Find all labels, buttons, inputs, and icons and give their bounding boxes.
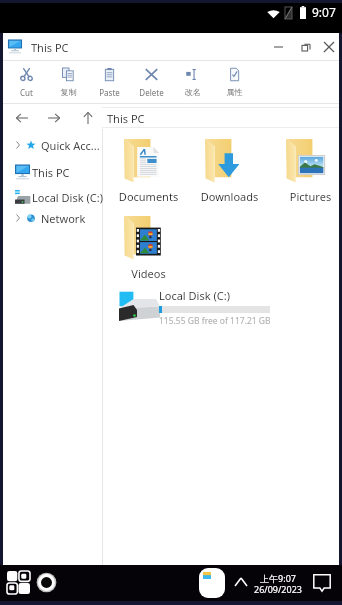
staticText: 改名: [172, 87, 213, 97]
button[interactable]: Local Disk (C:): [3, 185, 102, 209]
staticText: 上午9:07: [252, 572, 304, 584]
staticText: 复制: [48, 87, 89, 97]
button[interactable]: File Explorer: [199, 568, 225, 598]
staticText: This PC: [31, 40, 69, 55]
staticText: 9:07: [312, 4, 336, 20]
button[interactable]: Restore: [293, 33, 319, 60]
button[interactable]: 复制: [48, 62, 89, 103]
button[interactable]: Paste: [89, 62, 130, 103]
button[interactable]: Downloads: [189, 138, 270, 212]
staticText: Local Disk (C:): [159, 288, 230, 303]
staticText: Paste: [89, 87, 130, 98]
button[interactable]: Documents: [108, 138, 189, 212]
button[interactable]: Network: [3, 206, 102, 230]
button[interactable]: Close: [319, 33, 339, 60]
staticText: 26/09/2023: [252, 583, 304, 595]
button[interactable]: Local Disk (C:): [113, 285, 283, 329]
staticText: Cut: [6, 87, 47, 98]
button[interactable]: Up: [76, 106, 100, 130]
button[interactable]: Quick Acc...: [3, 133, 102, 157]
button[interactable]: 上午9:07: [252, 572, 304, 598]
staticText: Network: [41, 211, 86, 226]
button[interactable]: Search: [32, 568, 60, 596]
button[interactable]: Notifications: [305, 569, 331, 597]
button[interactable]: 属性: [214, 62, 255, 103]
staticText: 属性: [214, 87, 255, 97]
staticText: Downloads: [189, 189, 270, 204]
staticText: This PC: [107, 111, 145, 126]
button[interactable]: Forward: [42, 106, 66, 130]
staticText: Delete: [131, 87, 172, 98]
button[interactable]: Cut: [6, 62, 47, 103]
button[interactable]: This PC: [102, 107, 339, 128]
staticText: This PC: [32, 165, 70, 180]
staticText: Local Disk (C:): [32, 190, 103, 205]
button[interactable]: Minimize: [265, 33, 291, 60]
staticText: Documents: [108, 189, 189, 204]
button[interactable]: Start: [4, 568, 32, 596]
button[interactable]: Videos: [108, 215, 189, 289]
staticText: Quick Acc...: [41, 138, 100, 153]
button[interactable]: Back: [10, 106, 34, 130]
button[interactable]: Show hidden icons: [231, 571, 251, 593]
staticText: Videos: [108, 266, 189, 281]
staticText: 115.55 GB free of 117.21 GB: [159, 315, 271, 327]
button[interactable]: Delete: [131, 62, 172, 103]
staticText: Pictures: [270, 189, 342, 204]
button[interactable]: Pictures: [270, 138, 342, 212]
button[interactable]: This PC: [3, 160, 102, 184]
button[interactable]: 改名: [172, 62, 213, 103]
